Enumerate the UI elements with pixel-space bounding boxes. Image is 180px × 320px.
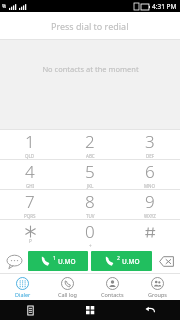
button[interactable]: 7: [0, 190, 60, 219]
staticText: MNO: [144, 183, 156, 189]
staticText: 1: [25, 130, 35, 153]
button[interactable]: [120, 220, 180, 249]
button[interactable]: Send message: [3, 250, 25, 272]
button[interactable]: Home: [60, 300, 120, 320]
staticText: 7: [25, 190, 35, 213]
button[interactable]: 1: [0, 130, 60, 159]
staticText: Contacts: [101, 291, 124, 298]
staticText: U.MO: [122, 257, 140, 266]
button[interactable]: 4: [0, 160, 60, 189]
staticText: 9: [145, 190, 155, 213]
button[interactable]: 9: [120, 190, 180, 219]
button[interactable]: 8: [60, 190, 120, 219]
staticText: %: [2, 3, 7, 10]
staticText: QLD: [25, 153, 35, 159]
staticText: 1: [53, 255, 56, 262]
button[interactable]: 1: [28, 251, 88, 271]
button[interactable]: 0: [60, 220, 120, 249]
staticText: JKL: [87, 183, 94, 189]
button[interactable]: Call log: [45, 274, 90, 300]
staticText: Groups: [148, 291, 167, 298]
button[interactable]: Dialer: [0, 274, 45, 300]
button[interactable]: 2: [60, 130, 120, 159]
staticText: 4:31 PM: [152, 2, 177, 11]
staticText: P: [29, 238, 32, 244]
button[interactable]: Back: [120, 300, 180, 320]
button[interactable]: Menu: [0, 300, 60, 320]
staticText: 5: [85, 160, 95, 183]
button[interactable]: P: [0, 220, 60, 249]
staticText: No contacts at the moment: [42, 64, 139, 74]
staticText: 2: [85, 130, 95, 153]
button[interactable]: 6: [120, 160, 180, 189]
button[interactable]: Contacts: [90, 274, 135, 300]
staticText: 4: [25, 160, 35, 183]
button[interactable]: Groups: [135, 274, 180, 300]
staticText: 6: [145, 160, 155, 183]
staticText: DEF: [146, 153, 155, 159]
staticText: +: [89, 243, 92, 249]
button[interactable]: 5: [60, 160, 120, 189]
button[interactable]: 3: [120, 130, 180, 159]
button[interactable]: 2: [91, 251, 152, 271]
staticText: 8: [85, 190, 95, 213]
button[interactable]: Backspace: [155, 250, 177, 272]
staticText: Press dial to redial: [51, 20, 129, 32]
staticText: Call log: [58, 291, 77, 298]
staticText: WXYZ: [144, 213, 156, 219]
staticText: 0: [85, 220, 95, 243]
staticText: PQRS: [24, 213, 36, 219]
button[interactable]: Press dial to redial: [0, 12, 180, 39]
staticText: 2: [117, 255, 120, 262]
staticText: Dialer: [15, 291, 31, 298]
staticText: ABC: [86, 153, 95, 159]
staticText: U.MO: [58, 257, 76, 266]
staticText: TUV: [86, 213, 95, 219]
staticText: 3: [145, 130, 155, 153]
staticText: GHI: [26, 183, 35, 189]
